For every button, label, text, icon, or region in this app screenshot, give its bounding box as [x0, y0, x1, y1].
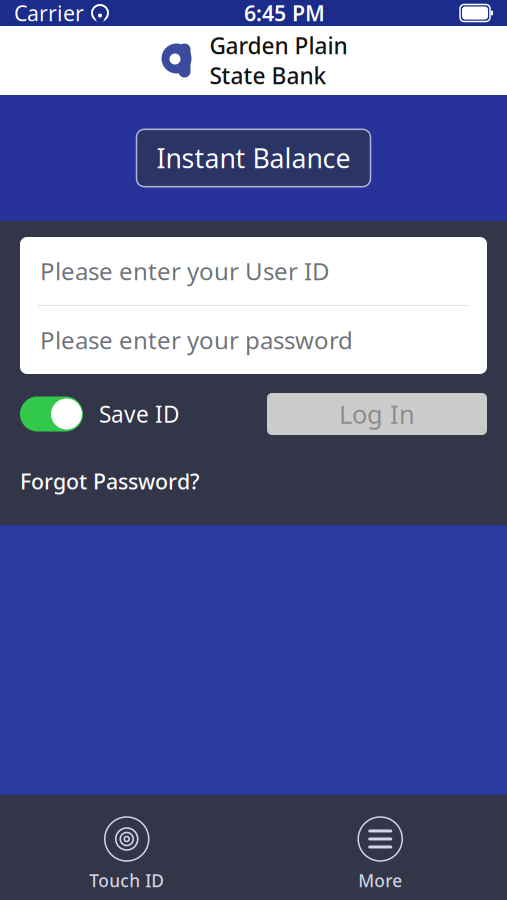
button[interactable]: More: [315, 817, 445, 892]
staticText: Please enter your User ID: [40, 255, 330, 287]
staticText: Touch ID: [89, 869, 164, 892]
staticText: Instant Balance: [156, 140, 350, 176]
button[interactable]: Please enter your User ID: [20, 237, 487, 305]
button[interactable]: Log In: [267, 393, 487, 435]
staticText: Save ID: [99, 399, 180, 429]
staticText: More: [358, 869, 402, 892]
button[interactable]: Please enter your password: [20, 306, 487, 374]
staticText: Forgot Password?: [20, 467, 200, 495]
button[interactable]: Touch ID: [62, 817, 192, 892]
button[interactable]: Forgot Password?: [0, 457, 220, 505]
staticText: Carrier: [14, 0, 84, 27]
button[interactable]: Instant Balance: [136, 129, 370, 187]
staticText: Garden Plain: [209, 30, 347, 60]
staticText: 6:45 PM: [244, 0, 325, 27]
staticText: Please enter your password: [40, 324, 353, 356]
button[interactable]: Save ID: [20, 396, 180, 431]
staticText: State Bank: [209, 60, 326, 91]
staticText: Log In: [339, 397, 415, 431]
